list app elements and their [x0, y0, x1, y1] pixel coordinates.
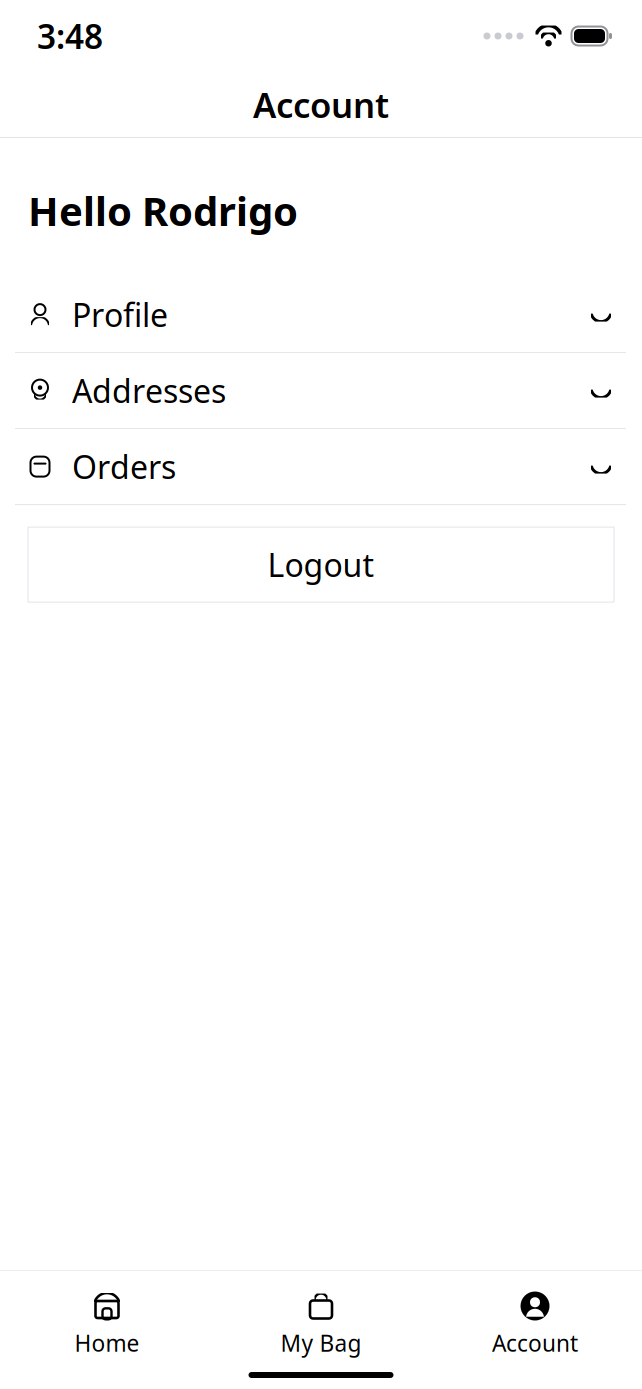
button[interactable]: Addresses — [0, 353, 642, 428]
staticText: 3:48 — [37, 14, 103, 58]
button[interactable]: Account — [428, 1287, 642, 1362]
staticText: Logout — [267, 543, 374, 586]
staticText: Profile — [72, 293, 168, 336]
staticText: Account — [253, 81, 389, 127]
button[interactable]: Logout — [28, 527, 614, 602]
staticText: Home — [74, 1328, 139, 1358]
staticText: Hello Rodrigo — [28, 184, 298, 237]
staticText: Orders — [72, 445, 176, 488]
staticText: Account — [492, 1328, 578, 1358]
button[interactable]: Profile — [0, 277, 642, 352]
button[interactable]: My Bag — [214, 1287, 428, 1362]
staticText: My Bag — [280, 1328, 361, 1358]
button[interactable]: Orders — [0, 429, 642, 504]
staticText: Addresses — [72, 369, 226, 412]
button[interactable]: Home — [0, 1287, 214, 1362]
